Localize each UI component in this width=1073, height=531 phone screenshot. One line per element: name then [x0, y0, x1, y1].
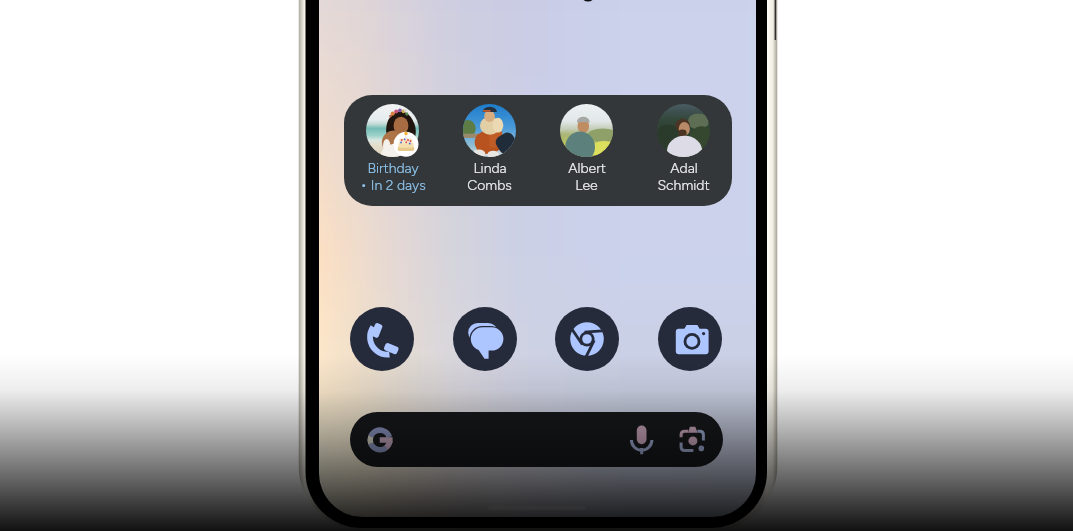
button[interactable]: Adal [635, 95, 732, 206]
staticText: Linda [473, 160, 507, 177]
staticText: • In 2 days [360, 177, 426, 194]
button[interactable]: Google Lens [675, 423, 709, 457]
button[interactable]: Albert [538, 95, 635, 206]
staticText: Lee [575, 177, 598, 194]
button[interactable]: Linda [441, 95, 538, 206]
button[interactable]: Birthday [344, 95, 441, 206]
staticText: Combs [467, 177, 512, 194]
button[interactable]: Chrome [555, 307, 619, 371]
staticText: Albert [568, 160, 606, 177]
button[interactable]: Messages [453, 307, 517, 371]
staticText: Schmidt [657, 177, 710, 194]
button[interactable]: Voice search [350, 412, 723, 467]
button[interactable]: Phone [350, 307, 414, 371]
staticText: Adal [670, 160, 698, 177]
button[interactable]: Voice search [625, 423, 659, 457]
staticText: Birthday [367, 160, 419, 177]
button[interactable]: Camera [658, 307, 722, 371]
